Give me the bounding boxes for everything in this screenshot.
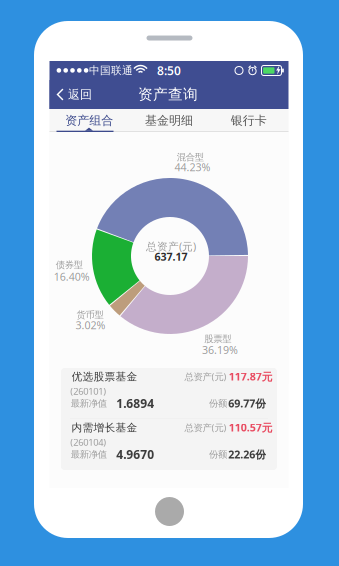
staticText: 总资产(元) [185,370,227,383]
staticText: 总资产(元) [185,421,227,434]
staticText: (260101) [70,385,106,397]
staticText: 中国联通 [89,64,133,77]
staticText: 总资产(元) [146,239,196,253]
staticText: 资产查询 [138,85,198,103]
staticText: (260104) [70,436,106,448]
staticText: 股票型 [204,333,231,345]
staticText: 117.87元 [229,369,273,383]
button[interactable]: 内需增长基金 [61,419,277,470]
staticText: 22.26份 [228,447,266,461]
staticText: 110.57元 [229,420,273,434]
staticText: 银行卡 [231,113,267,128]
staticText: 优选股票基金 [72,370,138,383]
button[interactable]: 基金明细 [49,109,288,132]
staticText: 最新净值 [71,398,107,409]
staticText: 债券型 [56,259,83,271]
staticText: 16.40% [54,269,90,284]
button[interactable]: 优选股票基金 [61,368,277,419]
staticText: 36.19% [202,343,238,357]
staticText: 69.77份 [228,396,266,410]
staticText: 混合型 [177,151,204,163]
staticText: 基金明细 [145,113,193,128]
staticText: 货币型 [77,309,104,321]
button[interactable]: 资产组合 [49,109,288,132]
staticText: 资产组合 [65,113,113,128]
staticText: 份额 [209,449,227,460]
button[interactable]: 银行卡 [49,109,288,132]
staticText: 637.17 [154,249,187,264]
staticText: 4.9670 [116,446,154,462]
staticText: 8:50 [157,62,181,78]
staticText: 44.23% [174,160,210,174]
staticText: 3.02% [75,318,105,332]
staticText: 份额 [209,398,227,409]
staticText: 最新净值 [71,449,107,460]
staticText: 1.6894 [116,395,154,411]
button[interactable]: 返回 [49,80,97,109]
staticText: 返回 [68,87,92,102]
staticText: 内需增长基金 [72,421,138,434]
